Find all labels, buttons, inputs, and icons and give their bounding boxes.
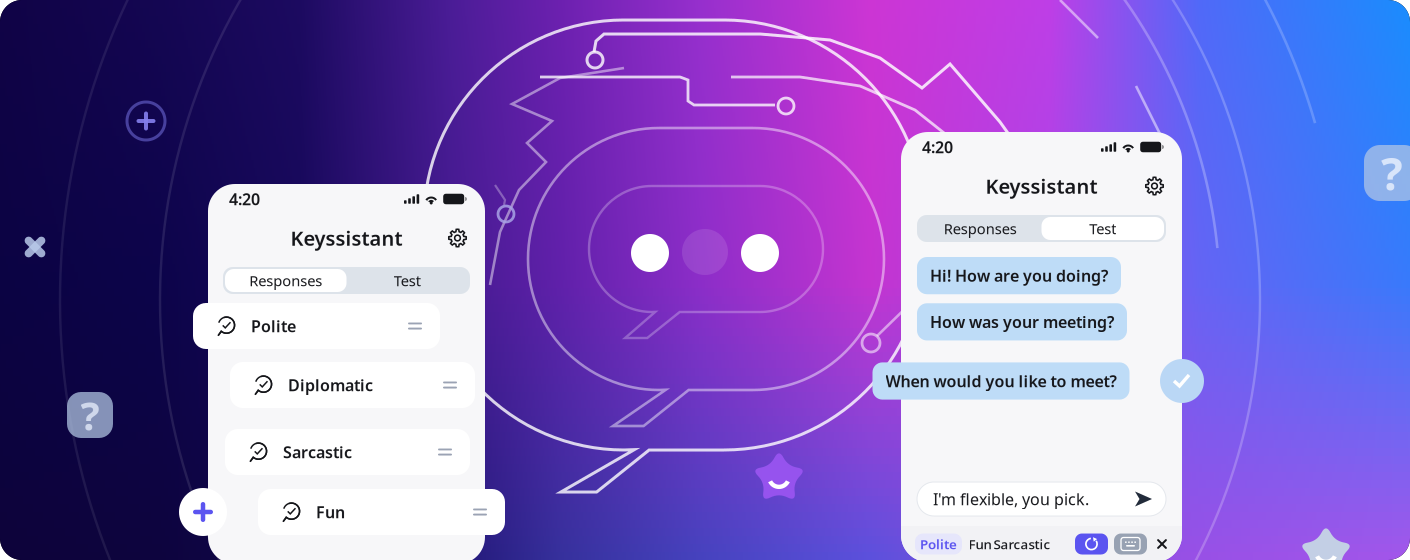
button[interactable]: Close — [1153, 535, 1171, 553]
button[interactable]: Fun — [258, 489, 505, 535]
button[interactable]: Sarcastic — [225, 429, 470, 475]
staticText: Fun — [968, 535, 991, 553]
staticText: Sarcastic — [993, 535, 1050, 553]
button[interactable]: Test — [1041, 217, 1164, 240]
staticText: 4:20 — [922, 136, 953, 158]
staticText: 4:20 — [229, 188, 260, 210]
staticText: ? — [1381, 143, 1403, 203]
staticText: Responses — [249, 271, 322, 290]
staticText: Polite — [251, 315, 296, 337]
button[interactable]: Fun — [967, 533, 993, 554]
button[interactable]: Polite — [915, 533, 962, 554]
staticText: Hi! How are you doing? — [930, 265, 1108, 286]
button[interactable]: Regenerate — [1075, 533, 1108, 554]
staticText: ? — [80, 388, 99, 441]
staticText: Keyssistant — [290, 225, 402, 251]
button[interactable]: Polite — [193, 303, 440, 349]
staticText: Fun — [316, 501, 345, 523]
button[interactable]: Diplomatic — [230, 362, 475, 408]
staticText: Responses — [944, 219, 1017, 238]
staticText: Test — [394, 271, 421, 290]
button[interactable]: Settings — [444, 224, 471, 251]
staticText: When would you like to meet? — [885, 370, 1116, 392]
staticText: I'm flexible, you pick. — [933, 488, 1089, 510]
staticText: Test — [1089, 219, 1116, 238]
button[interactable]: Keyboard — [1114, 533, 1147, 554]
button[interactable]: Sarcastic — [993, 533, 1051, 554]
staticText: Keyssistant — [985, 173, 1097, 199]
button[interactable]: Settings — [1141, 172, 1168, 199]
button[interactable]: Responses — [919, 217, 1041, 240]
staticText: Sarcastic — [283, 441, 352, 463]
button[interactable]: Test — [346, 269, 468, 292]
staticText: Diplomatic — [288, 374, 373, 396]
button[interactable]: Responses — [225, 269, 346, 292]
staticText: Polite — [920, 535, 957, 553]
staticText: How was your meeting? — [930, 311, 1114, 332]
